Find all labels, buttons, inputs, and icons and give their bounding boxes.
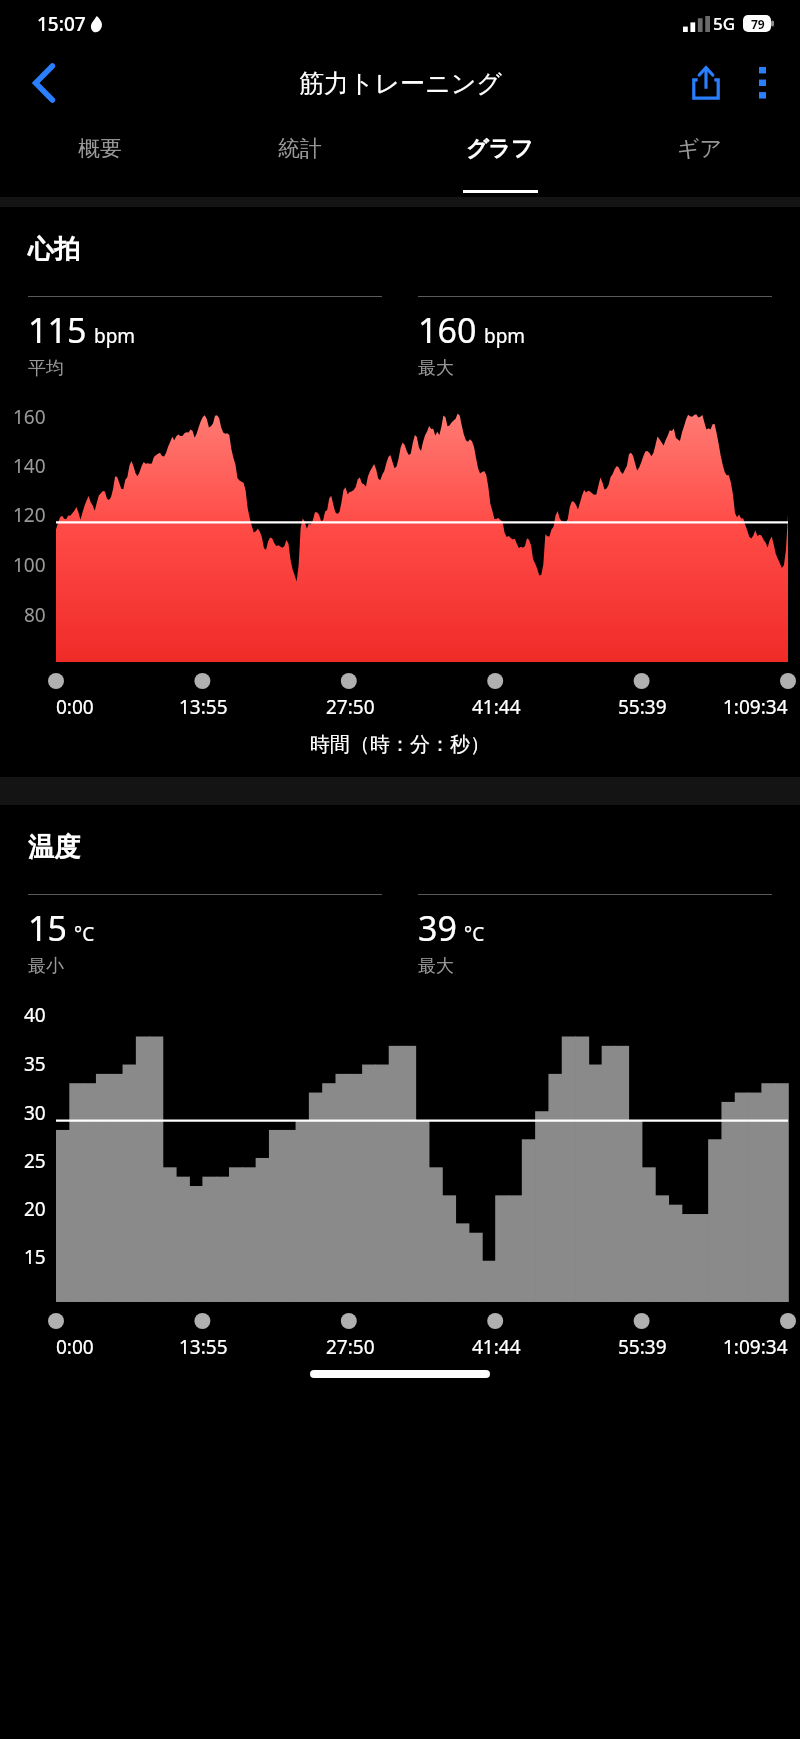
button[interactable]: 概要 (0, 119, 200, 197)
staticText: 0:00 (56, 1334, 94, 1360)
staticText: 15:07 (37, 11, 86, 37)
staticText: 平均 (28, 357, 64, 380)
staticText: 80 (24, 602, 46, 628)
staticText: 統計 (278, 135, 322, 163)
staticText: °C (464, 921, 485, 947)
staticText: ギア (677, 135, 723, 163)
staticText: 27:50 (326, 1334, 375, 1360)
staticText: 41:44 (472, 1334, 521, 1360)
staticText: 15 (24, 1244, 46, 1270)
staticText: 心拍 (28, 233, 80, 266)
staticText: 100 (13, 552, 46, 578)
staticText: 13:55 (179, 694, 228, 720)
staticText: 140 (13, 453, 46, 479)
staticText: 120 (13, 502, 46, 528)
staticText: 13:55 (179, 1334, 228, 1360)
staticText: 40 (24, 1002, 46, 1028)
staticText: °C (74, 921, 95, 947)
button[interactable]: Share (678, 55, 734, 111)
staticText: グラフ (466, 135, 534, 163)
button[interactable]: 統計 (200, 119, 400, 197)
staticText: 筋力トレーニング (299, 68, 502, 99)
staticText: 15 (28, 905, 67, 951)
staticText: 時間（時：分：秒） (310, 732, 490, 757)
staticText: 160 (13, 404, 46, 430)
button[interactable]: More options (734, 55, 790, 111)
button[interactable]: Back (16, 55, 72, 111)
staticText: 39 (418, 905, 457, 951)
staticText: bpm (484, 323, 526, 349)
staticText: 1:09:34 (723, 694, 788, 720)
button[interactable]: グラフ (400, 119, 600, 197)
staticText: bpm (94, 323, 136, 349)
staticText: 20 (24, 1196, 46, 1222)
staticText: 1:09:34 (723, 1334, 788, 1360)
staticText: 160 (418, 307, 477, 353)
staticText: 最大 (418, 955, 454, 978)
staticText: 41:44 (472, 694, 521, 720)
staticText: 35 (24, 1051, 46, 1077)
staticText: 30 (24, 1100, 46, 1126)
staticText: 概要 (78, 135, 122, 163)
staticText: 27:50 (326, 694, 375, 720)
staticText: 55:39 (618, 694, 667, 720)
staticText: 25 (24, 1148, 46, 1174)
staticText: 79 (751, 16, 765, 32)
staticText: 5G (713, 12, 736, 35)
staticText: 55:39 (618, 1334, 667, 1360)
staticText: 最大 (418, 357, 454, 380)
button[interactable]: ギア (600, 119, 800, 197)
staticText: 最小 (28, 955, 64, 978)
staticText: 115 (28, 307, 87, 353)
staticText: 0:00 (56, 694, 94, 720)
staticText: 温度 (28, 831, 80, 864)
